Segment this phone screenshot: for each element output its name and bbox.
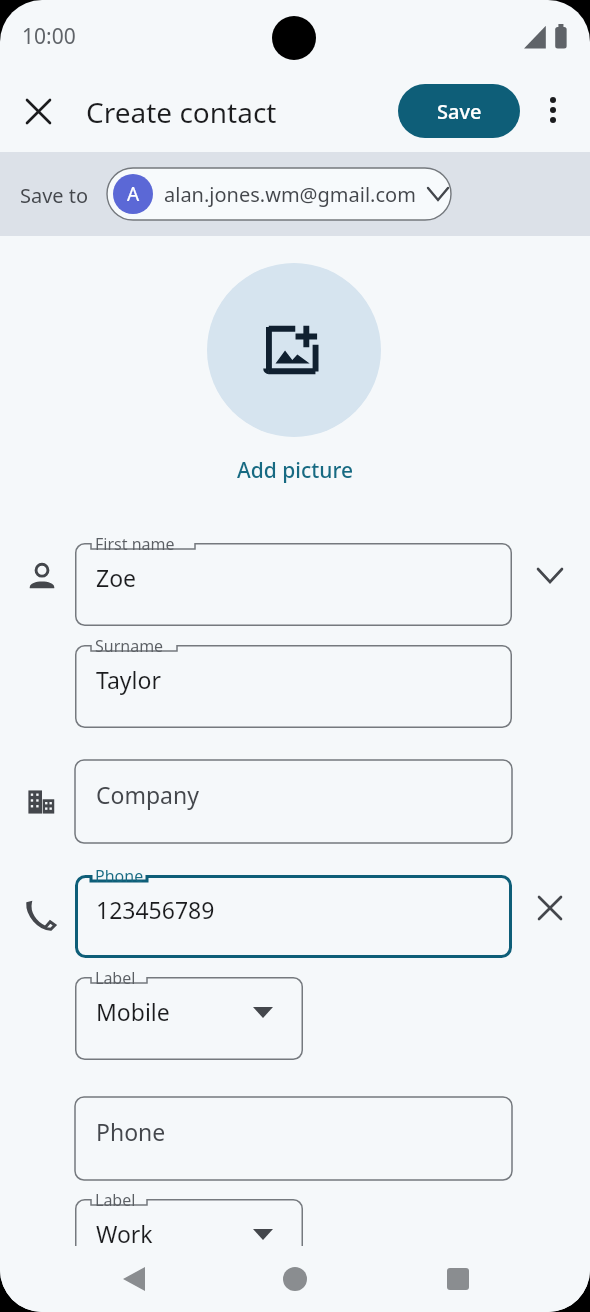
staticText: Taylor	[96, 664, 161, 695]
button[interactable]: First name	[75, 543, 512, 626]
staticText: 123456789	[96, 894, 215, 925]
staticText: Save	[437, 98, 482, 125]
staticText: Create contact	[86, 93, 277, 131]
staticText: Zoe	[96, 562, 137, 593]
staticText: Phone	[96, 1116, 166, 1147]
staticText: Company	[96, 779, 199, 810]
button[interactable]: Back	[104, 1256, 164, 1302]
staticText: First name	[95, 533, 175, 555]
button[interactable]: Phone	[75, 875, 512, 958]
staticText: alan.jones.wm@gmail.com	[164, 181, 416, 208]
staticText: Label	[95, 1189, 136, 1211]
staticText: Add picture	[237, 456, 353, 485]
button[interactable]: Add picture	[215, 452, 375, 488]
button[interactable]: Home	[265, 1256, 325, 1302]
button[interactable]: Expand name fields	[527, 552, 573, 598]
button[interactable]: More options	[530, 87, 576, 133]
button[interactable]: Recent apps	[428, 1256, 488, 1302]
button[interactable]: Phone	[75, 1097, 512, 1180]
staticText: Save to	[20, 182, 89, 209]
staticText: Work	[96, 1218, 153, 1249]
button[interactable]: Label	[75, 977, 303, 1060]
button[interactable]: Save	[398, 84, 520, 138]
button[interactable]: A	[107, 168, 451, 220]
button[interactable]: Clear phone	[527, 885, 573, 931]
staticText: Surname	[95, 635, 164, 657]
staticText: 10:00	[22, 22, 76, 51]
button[interactable]: Add picture	[207, 263, 381, 437]
button[interactable]: Label	[75, 1199, 303, 1282]
button[interactable]: Close	[14, 87, 62, 135]
staticText: Phone	[95, 865, 144, 887]
button[interactable]: Company	[75, 760, 512, 843]
staticText: A	[127, 181, 140, 207]
staticText: Label	[95, 967, 136, 989]
staticText: Mobile	[96, 996, 170, 1027]
button[interactable]: Surname	[75, 645, 512, 728]
